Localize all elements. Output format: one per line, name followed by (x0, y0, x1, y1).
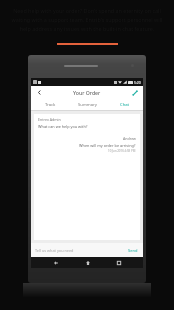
button[interactable]: Tell us what you need (35, 243, 126, 257)
staticText: When will my order be arriving? (79, 143, 136, 148)
staticText: Chat (120, 102, 130, 108)
button[interactable]: Recent apps (112, 257, 125, 268)
staticText: 10 Jun 2016 4:58 PM (108, 149, 136, 153)
button[interactable]: Home (81, 257, 94, 268)
button[interactable]: Summary (69, 99, 106, 110)
button[interactable]: Chat (106, 99, 143, 110)
button[interactable]: Back (49, 257, 62, 268)
staticText: 5:20 (134, 80, 141, 85)
staticText: Andrew (123, 136, 136, 141)
staticText: Tell us what you need (35, 248, 74, 253)
staticText: Send (128, 248, 138, 253)
staticText: Entrex Admin (38, 117, 61, 122)
button[interactable]: Back (34, 87, 45, 98)
staticText: Track (45, 102, 56, 108)
button[interactable]: Track (31, 99, 69, 110)
button[interactable]: Call support (129, 87, 140, 98)
staticText: Your Order (73, 89, 101, 96)
staticText: What can we help you with? (38, 124, 88, 129)
staticText: Summary (78, 102, 97, 108)
button[interactable]: Send (126, 246, 140, 255)
